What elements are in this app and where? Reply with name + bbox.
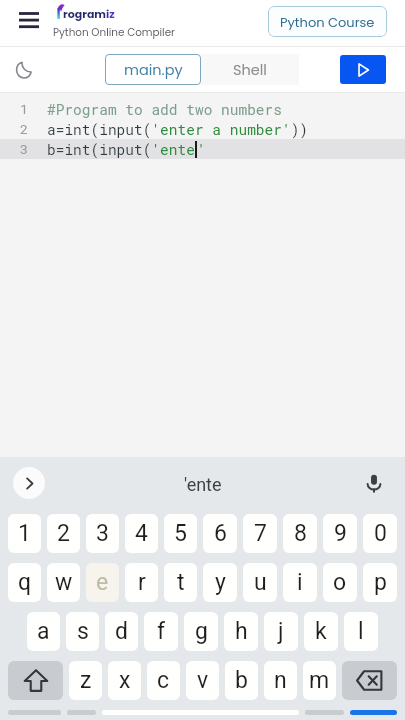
staticText: 7 xyxy=(254,520,267,547)
button[interactable]: Period xyxy=(305,710,344,715)
button[interactable]: p xyxy=(363,563,397,602)
staticText: #Program to add two numbers xyxy=(47,100,282,119)
button[interactable]: 6 xyxy=(203,514,237,553)
staticText: b xyxy=(235,667,248,694)
button[interactable]: o xyxy=(323,563,357,602)
staticText: 6 xyxy=(214,520,227,547)
button[interactable]: r xyxy=(125,563,158,602)
button[interactable]: Expand toolbar xyxy=(13,467,45,499)
staticText: e xyxy=(96,569,109,596)
staticText: 1 xyxy=(18,520,31,547)
staticText: 0 xyxy=(374,520,387,547)
button[interactable]: d xyxy=(105,612,138,651)
staticText: Shell xyxy=(233,60,267,80)
button[interactable]: b xyxy=(225,661,258,700)
staticText: g xyxy=(195,618,208,645)
staticText: k xyxy=(315,618,327,645)
button[interactable]: Enter xyxy=(350,710,397,715)
button[interactable]: w xyxy=(47,563,80,602)
staticText: n xyxy=(274,667,287,694)
button[interactable]: Python Course xyxy=(268,6,387,37)
button[interactable]: z xyxy=(69,661,102,700)
button[interactable]: v xyxy=(186,661,219,700)
button[interactable]: Toggle dark mode xyxy=(6,52,42,88)
staticText: p xyxy=(374,569,387,596)
staticText: d xyxy=(115,618,128,645)
button[interactable]: Shift xyxy=(8,661,63,700)
staticText: 8 xyxy=(294,520,307,547)
staticText: 3 xyxy=(96,520,109,547)
button[interactable]: main.py xyxy=(105,54,201,85)
button[interactable]: 2 xyxy=(47,514,80,553)
button[interactable]: c xyxy=(147,661,180,700)
staticText: c xyxy=(157,667,170,694)
staticText: 9 xyxy=(334,520,347,547)
staticText: i xyxy=(297,569,303,596)
button[interactable]: n xyxy=(264,661,297,700)
button[interactable]: y xyxy=(203,563,237,602)
button[interactable]: Backspace xyxy=(342,661,397,700)
staticText: 1 xyxy=(20,100,29,118)
button[interactable]: 3 xyxy=(86,514,119,553)
button[interactable]: Voice input xyxy=(360,469,388,497)
staticText: a xyxy=(37,618,50,645)
staticText: j xyxy=(278,618,284,645)
button[interactable]: 5 xyxy=(164,514,197,553)
staticText: o xyxy=(333,569,347,596)
button[interactable]: Shell xyxy=(201,54,299,85)
staticText: 2 xyxy=(57,520,70,547)
button[interactable]: u xyxy=(243,563,277,602)
staticText: 5 xyxy=(174,520,187,547)
staticText: y xyxy=(215,569,226,596)
staticText: t xyxy=(177,569,185,596)
staticText: z xyxy=(80,667,92,694)
button[interactable]: Menu xyxy=(9,2,49,42)
button[interactable]: 8 xyxy=(283,514,317,553)
staticText: a=int(input('enter a number')) xyxy=(47,120,309,139)
button[interactable]: t xyxy=(164,563,197,602)
button[interactable]: 4 xyxy=(125,514,158,553)
button[interactable]: h xyxy=(224,612,258,651)
staticText: w xyxy=(55,569,73,596)
button[interactable]: m xyxy=(303,661,336,700)
staticText: x xyxy=(119,667,131,694)
staticText: main.py xyxy=(124,60,183,80)
staticText: rogramiz xyxy=(63,6,115,21)
staticText: 2 xyxy=(20,120,29,138)
staticText: 4 xyxy=(135,520,148,547)
button[interactable]: f xyxy=(144,612,178,651)
staticText: f xyxy=(157,618,165,645)
button[interactable]: s xyxy=(66,612,99,651)
staticText: Python Online Compiler xyxy=(53,25,175,40)
staticText: 'ente xyxy=(184,474,222,495)
staticText: s xyxy=(77,618,89,645)
staticText: 3 xyxy=(20,140,29,158)
staticText: b=int(input('ente xyxy=(47,140,195,159)
staticText: m xyxy=(309,667,330,694)
button[interactable]: 9 xyxy=(323,514,357,553)
button[interactable]: q xyxy=(8,563,41,602)
staticText: ' xyxy=(197,140,206,159)
button[interactable]: 1 xyxy=(8,514,41,553)
staticText: Python Course xyxy=(280,13,375,31)
staticText: h xyxy=(235,618,248,645)
staticText: q xyxy=(18,569,32,596)
button[interactable]: 0 xyxy=(363,514,397,553)
button[interactable]: l xyxy=(344,612,378,651)
button[interactable]: e xyxy=(86,563,119,602)
button[interactable]: g xyxy=(184,612,218,651)
button[interactable]: j xyxy=(264,612,298,651)
staticText: r xyxy=(138,569,146,596)
staticText: u xyxy=(254,569,267,596)
button[interactable]: a xyxy=(27,612,60,651)
button[interactable]: Run xyxy=(340,55,386,84)
button[interactable]: i xyxy=(283,563,317,602)
staticText: l xyxy=(358,618,364,645)
button[interactable]: k xyxy=(304,612,338,651)
staticText: v xyxy=(197,667,209,694)
button[interactable]: Emoji xyxy=(67,710,96,715)
button[interactable]: x xyxy=(108,661,141,700)
button[interactable]: 7 xyxy=(243,514,277,553)
